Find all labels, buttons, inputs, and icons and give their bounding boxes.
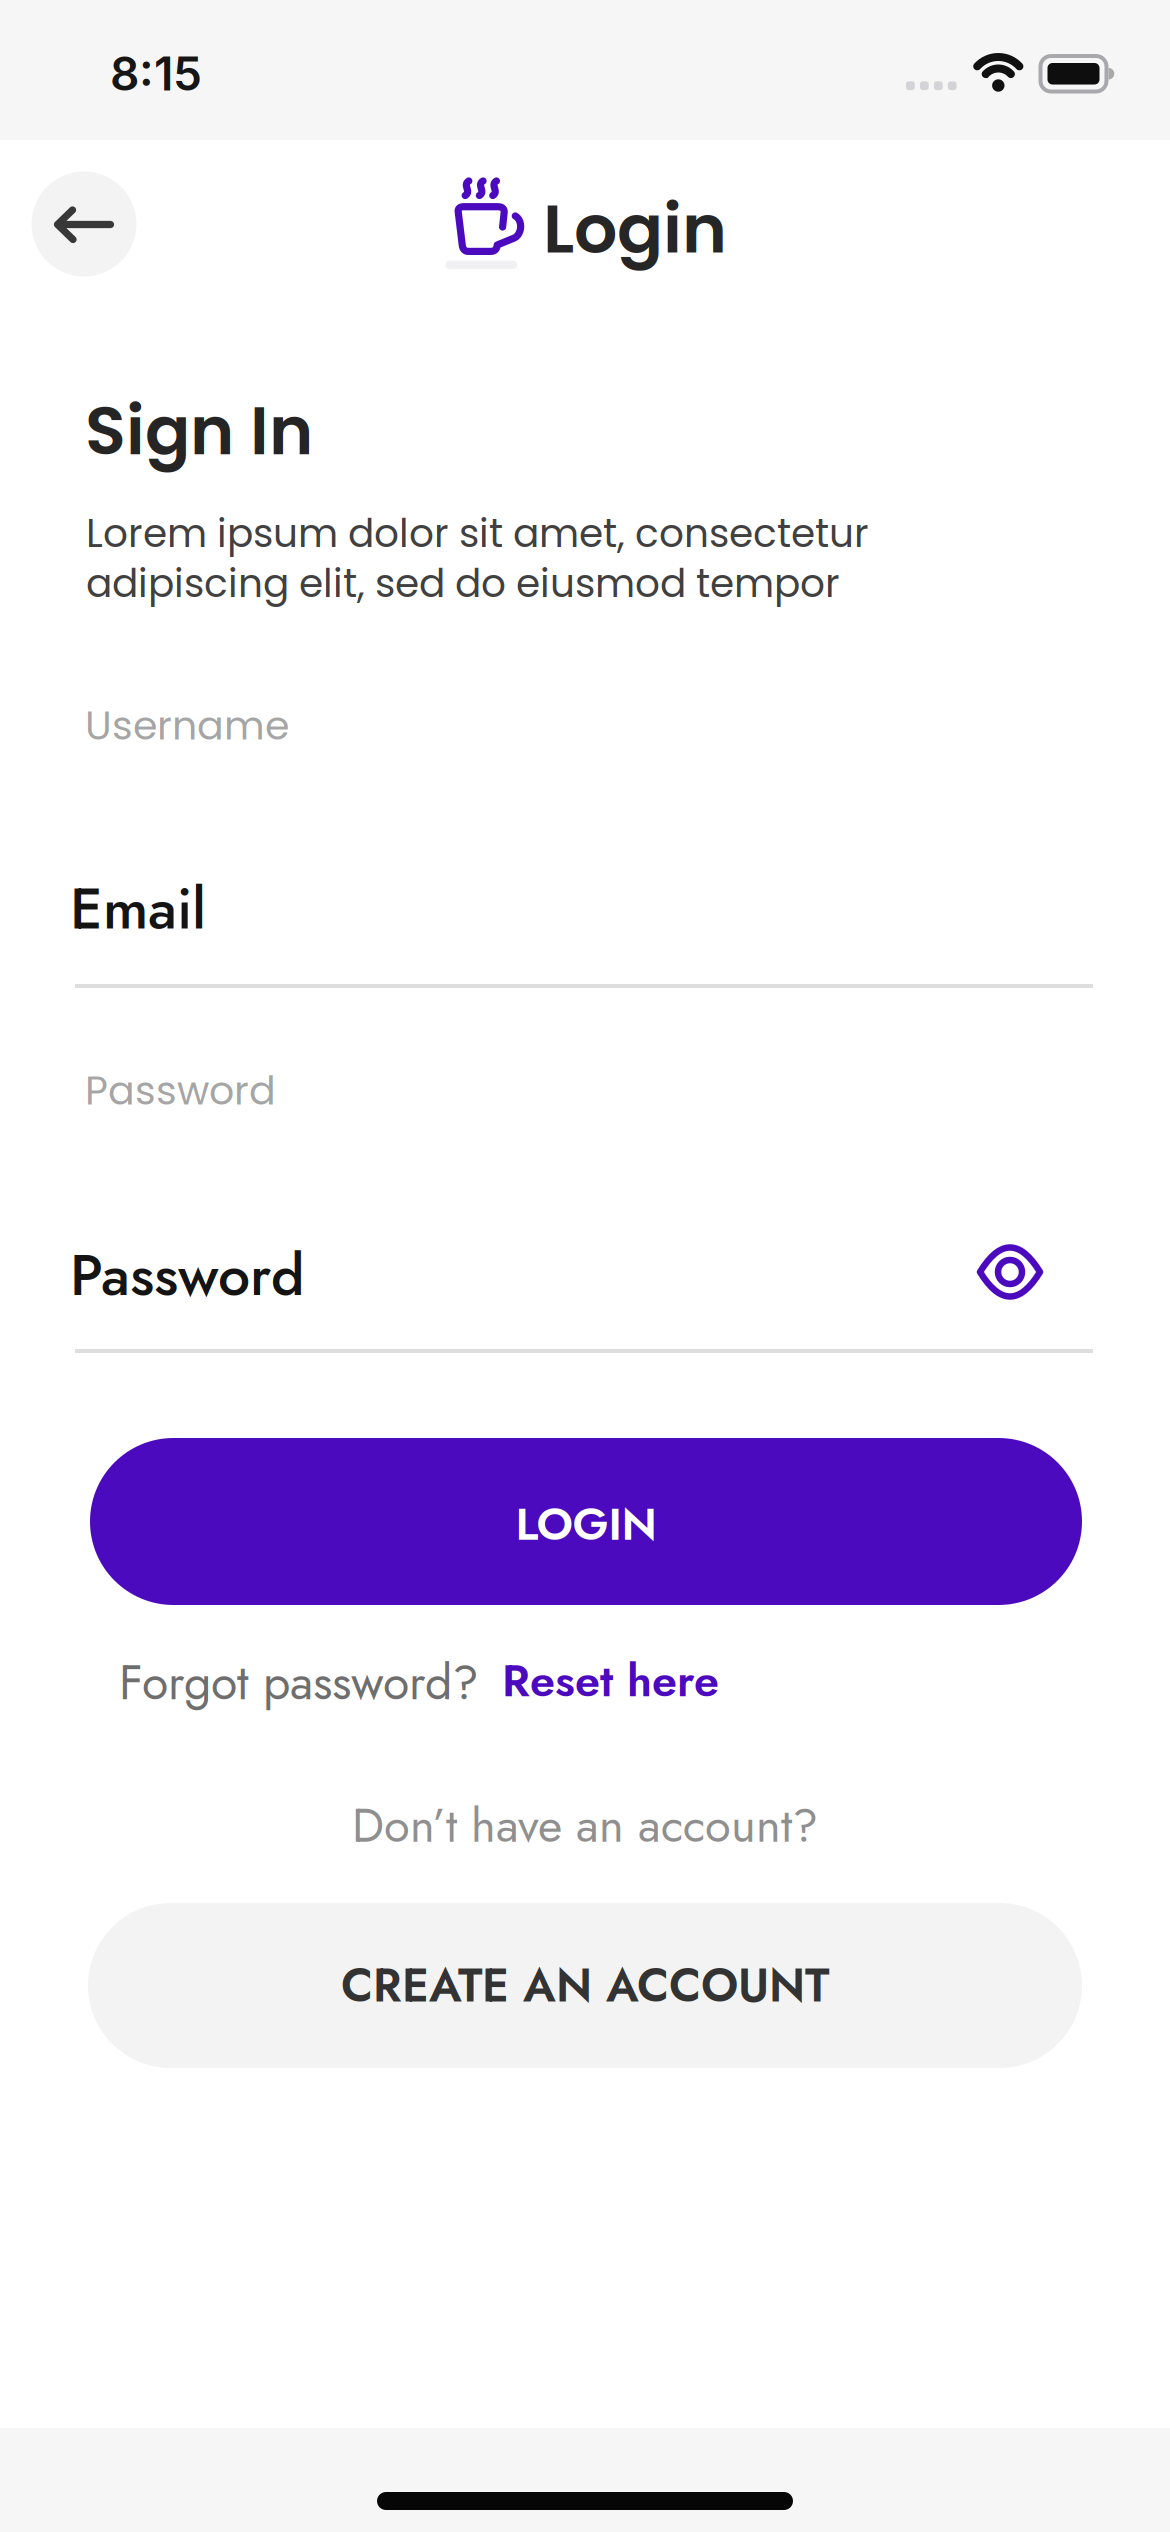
staticText: Forgot password? xyxy=(119,1648,479,1717)
staticText: Lorem ipsum dolor sit amet, consectetur xyxy=(86,506,869,561)
staticText: 8:15 xyxy=(110,46,202,102)
staticText: Password xyxy=(70,1234,305,1316)
staticText: CREATE AN ACCOUNT xyxy=(341,1952,829,2019)
button[interactable]: LOGIN xyxy=(90,1438,1082,1605)
staticText: LOGIN xyxy=(515,1491,656,1556)
staticText: adipiscing elit, sed do eiusmod tempor xyxy=(86,556,840,611)
staticText: Don’t have an account? xyxy=(352,1791,818,1859)
staticText: Sign In xyxy=(85,384,313,478)
button[interactable]: CREATE AN ACCOUNT xyxy=(88,1903,1082,2068)
staticText: Email xyxy=(70,867,206,950)
button[interactable]: Back xyxy=(31,171,136,276)
staticText: Username xyxy=(85,698,289,753)
staticText: Password xyxy=(85,1063,276,1118)
staticText: Reset here xyxy=(502,1648,719,1713)
staticText: Login xyxy=(543,181,727,276)
button[interactable]: Show password xyxy=(979,1245,1041,1299)
button[interactable]: Reset here xyxy=(502,1648,719,1713)
